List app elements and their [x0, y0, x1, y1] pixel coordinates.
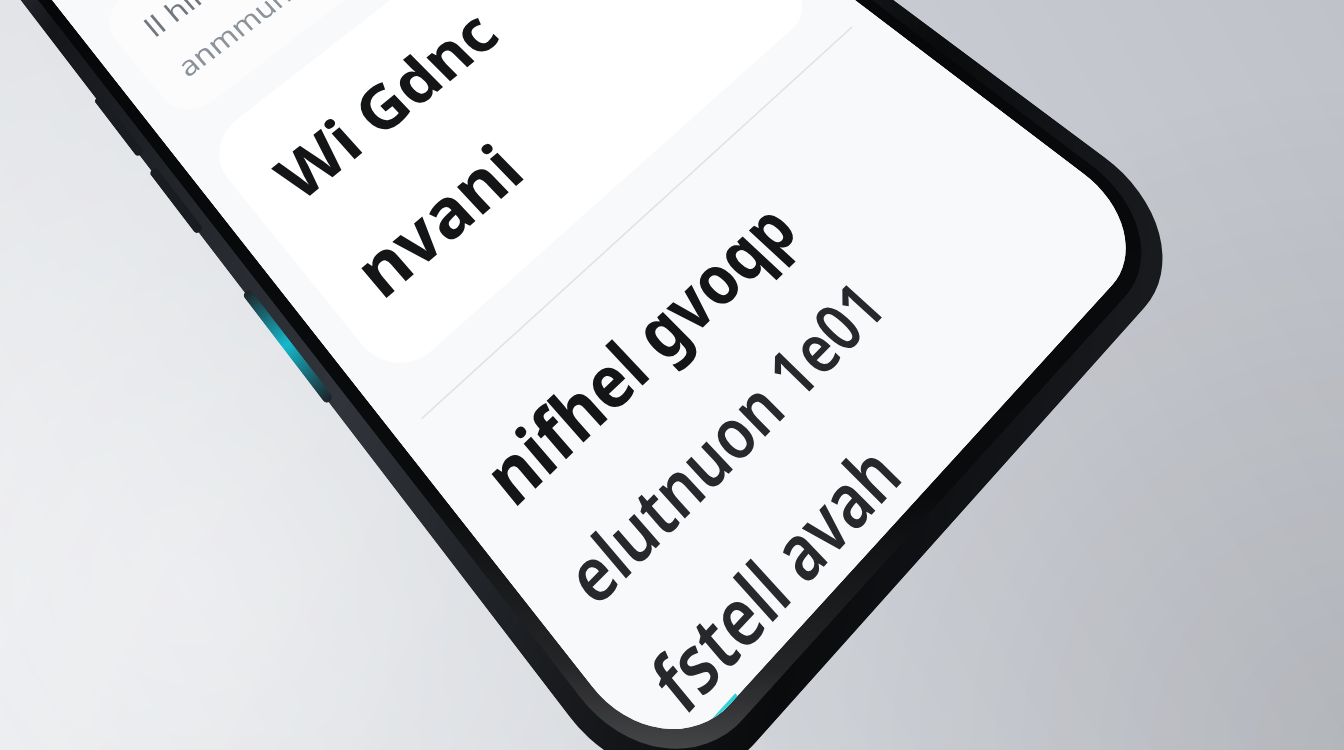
staticText: nifhel gvoqp [463, 184, 816, 527]
staticText: fstell avah [630, 423, 922, 737]
other: Volume up [94, 95, 144, 157]
staticText: nvani [334, 125, 542, 318]
staticText: Wi Gdnc [257, 0, 517, 218]
other: Power [242, 288, 334, 405]
button[interactable]: Wi Gdnc [202, 0, 821, 384]
button[interactable]: ll himiniob [96, 0, 582, 124]
staticText: ll himiniob [136, 0, 284, 44]
staticText: elutnuon 1e01 [546, 262, 905, 627]
staticText: anmmunij li [169, 0, 329, 84]
other: Volume down [149, 167, 204, 235]
